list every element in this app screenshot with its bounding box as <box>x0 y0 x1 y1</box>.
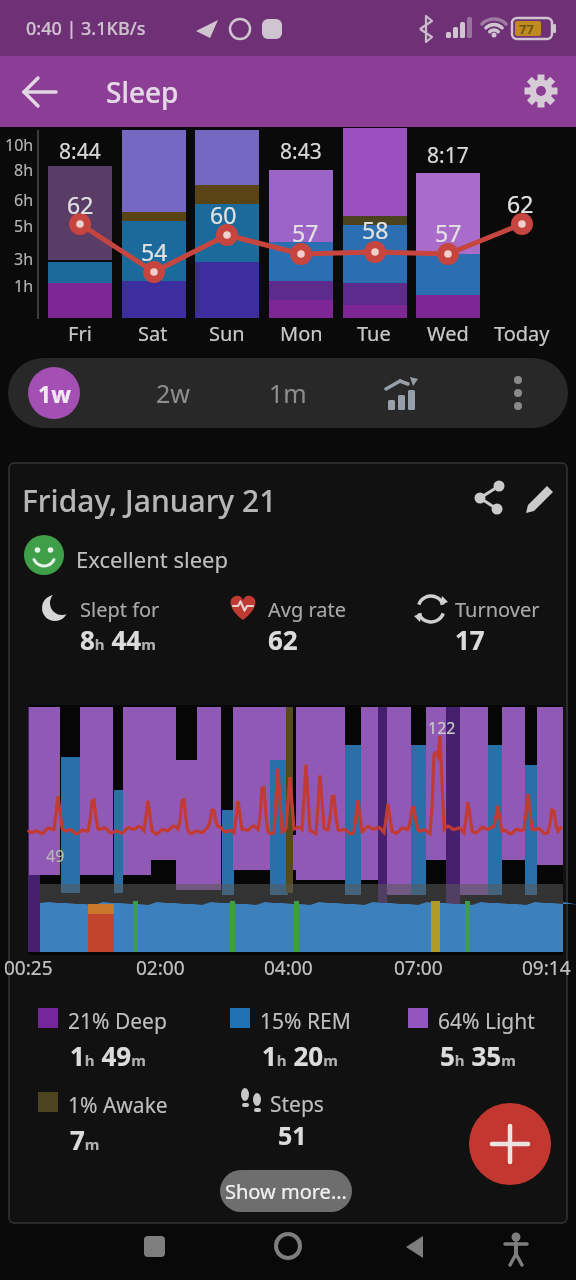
staticText: 77 <box>519 20 534 38</box>
staticText: 58 <box>362 214 389 245</box>
staticText: 1m <box>269 376 307 410</box>
staticText: 62 <box>268 622 298 657</box>
button[interactable] <box>264 1230 312 1280</box>
staticText: 3h <box>14 248 34 270</box>
staticText: Slept for <box>80 596 160 623</box>
staticText: 6h <box>14 189 34 211</box>
staticText: Steps <box>270 1090 324 1119</box>
staticText: 8:44 <box>59 137 101 166</box>
staticText: 00:25 <box>4 955 53 981</box>
button[interactable] <box>18 69 64 115</box>
button[interactable] <box>519 69 563 113</box>
staticText: Excellent sleep <box>76 544 228 574</box>
staticText: 1w <box>38 378 71 409</box>
staticText: 8h <box>14 159 34 181</box>
button[interactable]: 2w <box>138 367 208 419</box>
staticText: 8:43 <box>280 137 322 166</box>
staticText: 49 <box>46 845 65 867</box>
staticText: Avg rate <box>268 596 347 623</box>
button[interactable] <box>496 367 540 419</box>
staticText: Sleep <box>106 73 179 111</box>
staticText: 15% REM <box>260 1007 351 1036</box>
staticText: 1% Awake <box>68 1091 168 1120</box>
staticText: 21% Deep <box>68 1007 167 1036</box>
staticText: 02:00 <box>136 955 185 981</box>
staticText: 8:17 <box>427 141 469 170</box>
staticText: Today <box>494 320 550 347</box>
staticText: 62 <box>507 188 534 219</box>
staticText: Sun <box>209 320 245 347</box>
staticText: 64% Light <box>438 1007 535 1036</box>
button[interactable]: Show more... <box>220 1170 352 1212</box>
staticText: 122 <box>428 717 456 739</box>
staticText: 62 <box>67 189 94 220</box>
staticText: 51 <box>278 1118 307 1152</box>
staticText: 5h 35m <box>440 1038 516 1073</box>
staticText: 57 <box>435 217 462 248</box>
staticText: 04:00 <box>264 955 313 981</box>
button[interactable] <box>392 1230 440 1280</box>
staticText: 0:40 | 3.1KB/s <box>26 16 146 41</box>
staticText: 1h <box>14 275 34 297</box>
staticText: 09:14 <box>522 955 571 981</box>
staticText: 2w <box>156 376 190 410</box>
staticText: 7m <box>70 1122 100 1157</box>
staticText: 5h <box>14 215 34 237</box>
button[interactable] <box>492 1230 540 1280</box>
staticText: 60 <box>210 199 237 230</box>
staticText: Friday, January 21 <box>22 480 277 521</box>
staticText: Show more... <box>225 1178 347 1205</box>
staticText: Turnover <box>455 596 540 623</box>
button[interactable]: 1w <box>28 367 80 419</box>
staticText: 17 <box>455 622 485 657</box>
staticText: Mon <box>280 320 323 347</box>
staticText: 1h 49m <box>70 1038 146 1073</box>
staticText: Sat <box>138 320 168 347</box>
staticText: Tue <box>357 320 391 347</box>
button[interactable]: 1m <box>253 367 323 419</box>
button[interactable] <box>520 478 560 518</box>
staticText: 10h <box>5 134 34 156</box>
button[interactable] <box>131 1230 179 1280</box>
staticText: 07:00 <box>394 955 443 981</box>
button[interactable] <box>470 478 510 518</box>
staticText: Wed <box>427 320 469 347</box>
button[interactable] <box>370 367 434 419</box>
staticText: 8h 44m <box>80 622 156 657</box>
button[interactable] <box>469 1103 551 1185</box>
staticText: 54 <box>141 236 168 267</box>
staticText: 57 <box>292 217 319 248</box>
staticText: 1h 20m <box>262 1038 338 1073</box>
staticText: Fri <box>68 320 92 347</box>
